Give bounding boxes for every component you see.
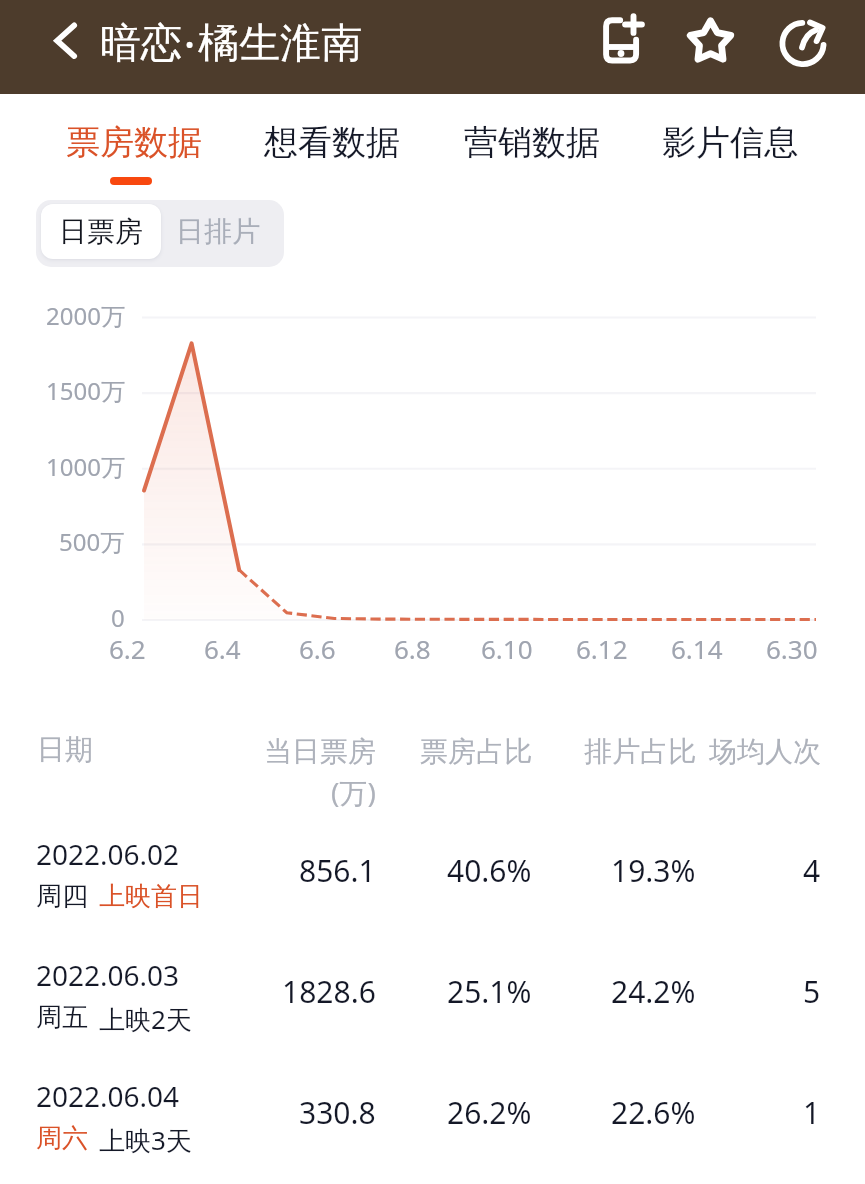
staticText: 票房数据 bbox=[66, 121, 202, 164]
staticText: 6.12 bbox=[576, 631, 628, 666]
staticText: 6.8 bbox=[394, 631, 431, 666]
staticText: 1828.6 bbox=[282, 971, 376, 1012]
button[interactable]: 影片信息 bbox=[630, 94, 830, 189]
staticText: 22.6% bbox=[611, 1092, 696, 1133]
staticText: 330.8 bbox=[299, 1092, 376, 1133]
staticText: 周五 bbox=[36, 1001, 88, 1034]
staticText: 上映3天 bbox=[99, 1122, 192, 1158]
staticText: 2000万 bbox=[46, 299, 125, 332]
staticText: 25.1% bbox=[447, 971, 532, 1012]
staticText: 6.10 bbox=[481, 631, 533, 666]
staticText: 2022.06.02 bbox=[36, 835, 180, 873]
staticText: 日期 bbox=[37, 732, 93, 767]
staticText: 日票房 bbox=[59, 214, 143, 249]
staticText: 40.6% bbox=[447, 850, 532, 891]
button[interactable]: 2022.06.02 bbox=[0, 822, 865, 940]
staticText: 想看数据 bbox=[264, 121, 400, 164]
button[interactable]: Back bbox=[40, 14, 102, 76]
staticText: 周六 bbox=[36, 1122, 88, 1155]
staticText: 暗恋 bbox=[100, 18, 182, 70]
button[interactable]: 日排片 bbox=[156, 204, 280, 259]
staticText: 19.3% bbox=[611, 850, 696, 891]
staticText: 当日票房 bbox=[264, 734, 376, 769]
staticText: 2022.06.04 bbox=[36, 1077, 180, 1115]
staticText: 日排片 bbox=[176, 214, 260, 249]
button[interactable]: 2022.06.03 bbox=[0, 943, 865, 1061]
button[interactable]: 票房数据 bbox=[34, 94, 234, 189]
staticText: 橘生淮南 bbox=[198, 18, 362, 70]
button[interactable]: 想看数据 bbox=[232, 94, 432, 189]
button[interactable]: 营销数据 bbox=[432, 94, 632, 189]
staticText: 6.6 bbox=[299, 631, 336, 666]
button[interactable]: 2022.06.04 bbox=[0, 1064, 865, 1182]
staticText: 票房占比 bbox=[420, 734, 532, 769]
staticText: 4 bbox=[803, 850, 821, 891]
staticText: 影片信息 bbox=[662, 121, 798, 164]
staticText: 26.2% bbox=[447, 1092, 532, 1133]
staticText: 5 bbox=[803, 971, 821, 1012]
staticText: 1000万 bbox=[46, 450, 125, 483]
button[interactable]: Add to watchlist bbox=[590, 10, 660, 80]
staticText: 0 bbox=[111, 601, 125, 634]
button[interactable]: Share bbox=[767, 9, 837, 79]
staticText: 856.1 bbox=[299, 850, 376, 891]
staticText: 6.30 bbox=[766, 631, 818, 666]
staticText: 场均人次 bbox=[709, 734, 821, 769]
staticText: 6.2 bbox=[109, 631, 146, 666]
staticText: 1 bbox=[803, 1092, 821, 1133]
staticText: 上映2天 bbox=[99, 1001, 192, 1037]
staticText: (万) bbox=[331, 773, 376, 811]
staticText: 1500万 bbox=[46, 374, 125, 407]
staticText: 6.14 bbox=[671, 631, 723, 666]
staticText: 500万 bbox=[59, 525, 125, 558]
staticText: 周四 bbox=[36, 880, 88, 913]
staticText: · bbox=[184, 16, 196, 72]
staticText: 6.4 bbox=[204, 631, 241, 666]
button[interactable]: Favorite bbox=[676, 6, 746, 76]
staticText: 2022.06.03 bbox=[36, 956, 180, 994]
staticText: 营销数据 bbox=[464, 121, 600, 164]
button[interactable]: 日票房 bbox=[41, 204, 161, 259]
staticText: 排片占比 bbox=[584, 734, 696, 769]
staticText: 上映首日 bbox=[99, 880, 203, 913]
staticText: 24.2% bbox=[611, 971, 696, 1012]
